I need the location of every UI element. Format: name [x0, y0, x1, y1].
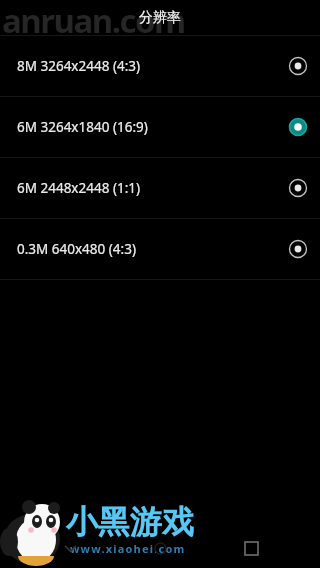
staticText: 8M 3264x2448 (4:3) — [17, 57, 288, 75]
button[interactable]: Recent apps — [230, 528, 272, 568]
staticText: www.xiaohei.com — [70, 541, 186, 556]
staticText: 0.3M 640x480 (4:3) — [17, 240, 288, 258]
button[interactable]: 6M 3264x1840 (16:9) — [0, 97, 320, 157]
button[interactable]: 0.3M 640x480 (4:3) — [0, 219, 320, 279]
button[interactable]: 6M 2448x2448 (1:1) — [0, 158, 320, 218]
staticText: 6M 2448x2448 (1:1) — [17, 179, 288, 197]
button[interactable]: Home — [139, 528, 181, 568]
staticText: 6M 3264x1840 (16:9) — [17, 118, 288, 136]
staticText: 小黑游戏 — [66, 502, 194, 542]
staticText: 分辨率 — [139, 9, 181, 27]
button[interactable]: Back — [49, 528, 91, 568]
button[interactable]: 8M 3264x2448 (4:3) — [0, 36, 320, 96]
staticText: anruan.com — [2, 0, 185, 43]
